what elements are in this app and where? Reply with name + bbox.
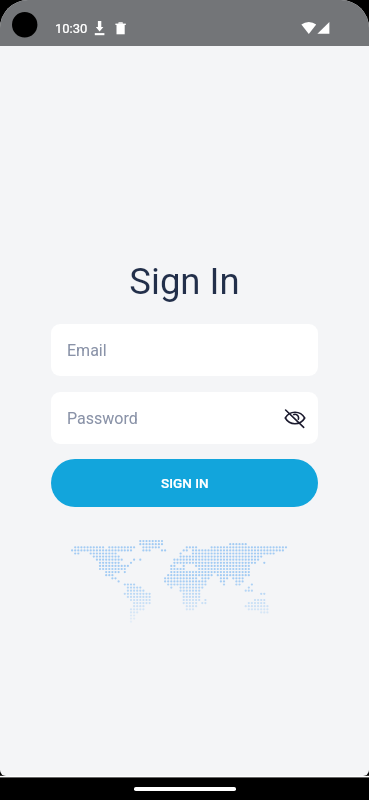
staticText: SIGN IN bbox=[161, 475, 209, 491]
staticText: 10:30 bbox=[55, 21, 88, 36]
button[interactable]: Email bbox=[51, 324, 318, 376]
button[interactable]: SIGN IN bbox=[51, 459, 318, 507]
button[interactable]: Password bbox=[51, 392, 318, 444]
button[interactable]: Toggle password visibility bbox=[278, 401, 312, 435]
staticText: Password bbox=[67, 409, 138, 428]
staticText: Email bbox=[67, 341, 107, 360]
staticText: Sign In bbox=[0, 260, 369, 303]
